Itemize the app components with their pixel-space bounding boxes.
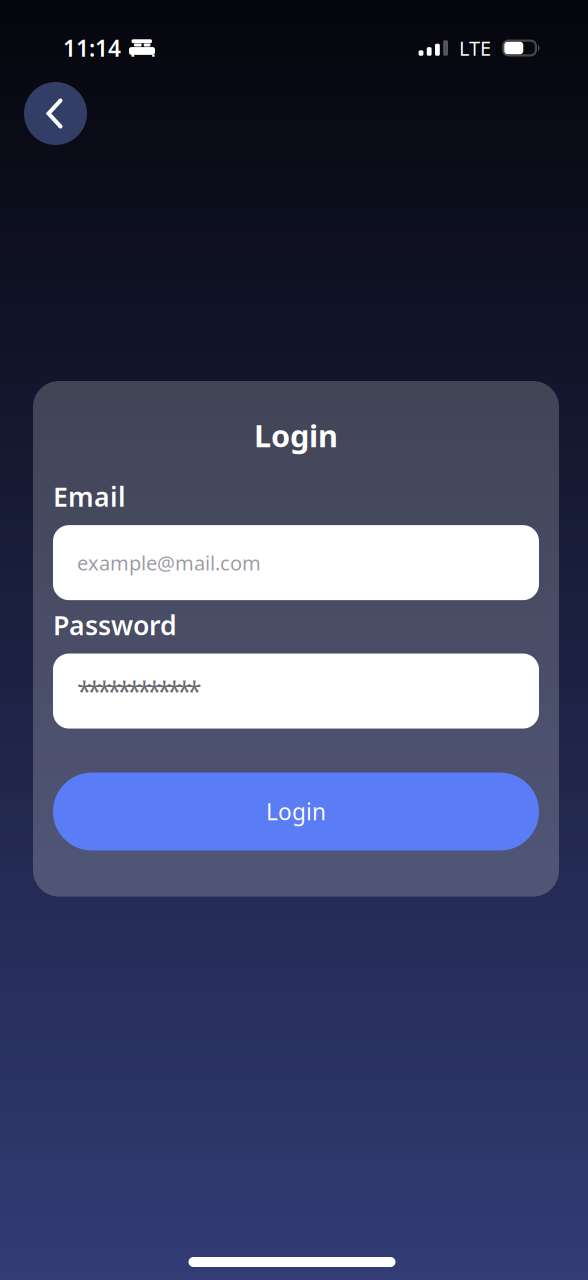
staticText: LTE — [459, 35, 491, 61]
staticText: Login — [266, 796, 326, 827]
button[interactable]: Password — [53, 654, 539, 729]
button[interactable]: Email — [53, 525, 539, 600]
button[interactable]: Back — [24, 82, 87, 145]
staticText: 11:14 — [63, 33, 121, 63]
staticText: Email — [53, 479, 126, 514]
staticText: example@mail.com — [77, 549, 261, 576]
staticText: Login — [254, 415, 338, 456]
staticText: ************ — [77, 673, 202, 709]
staticText: Password — [53, 607, 177, 642]
button[interactable]: Login — [53, 773, 539, 851]
